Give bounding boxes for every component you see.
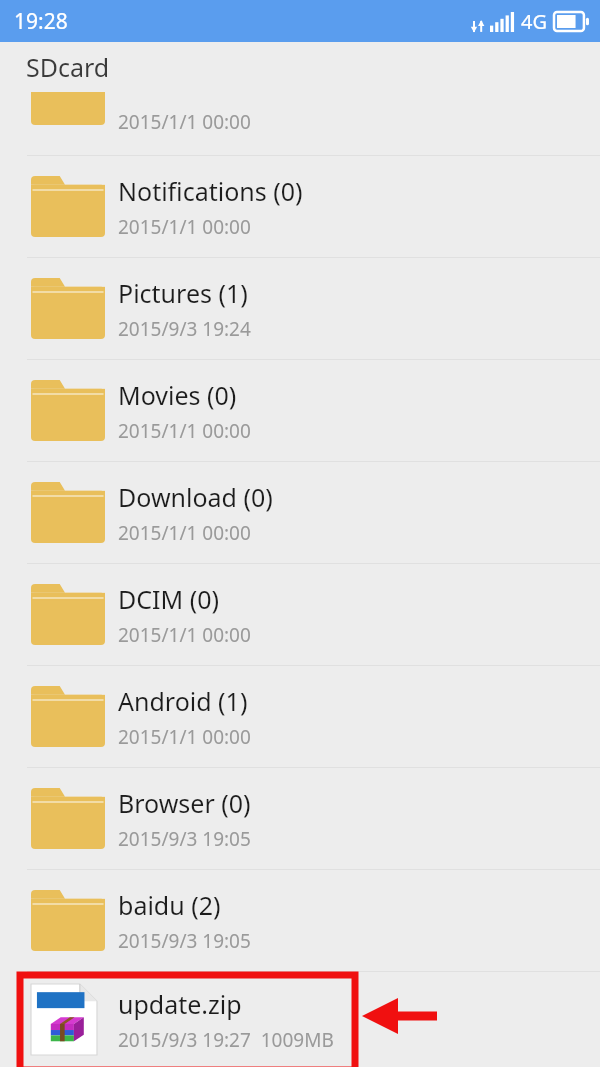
button[interactable]: 2015/1/1 00:00 bbox=[0, 92, 600, 156]
staticText: Browser (0) bbox=[118, 786, 251, 820]
staticText: 2015/1/1 00:00 bbox=[118, 724, 251, 750]
staticText: Android (1) bbox=[118, 684, 248, 718]
staticText: update.zip bbox=[118, 987, 242, 1021]
staticText: Download (0) bbox=[118, 480, 273, 514]
staticText: 2015/9/3 19:27 1009MB bbox=[118, 1027, 334, 1053]
staticText: 4G bbox=[521, 8, 547, 35]
staticText: 2015/9/3 19:24 bbox=[118, 316, 251, 342]
staticText: 2015/9/3 19:05 bbox=[118, 826, 251, 852]
staticText: Movies (0) bbox=[118, 378, 237, 412]
staticText: Pictures (1) bbox=[118, 276, 248, 310]
button[interactable]: Download (0) bbox=[0, 462, 600, 564]
staticText: 2015/1/1 00:00 bbox=[118, 214, 251, 240]
staticText: 2015/1/1 00:00 bbox=[118, 520, 251, 546]
button[interactable]: DCIM (0) bbox=[0, 564, 600, 666]
button[interactable]: Android (1) bbox=[0, 666, 600, 768]
staticText: 2015/1/1 00:00 bbox=[118, 418, 251, 444]
staticText: 2015/9/3 19:05 bbox=[118, 928, 251, 954]
button[interactable]: baidu (2) bbox=[0, 870, 600, 972]
staticText: 2015/1/1 00:00 bbox=[118, 622, 251, 648]
button[interactable]: Movies (0) bbox=[0, 360, 600, 462]
staticText: 2015/1/1 00:00 bbox=[118, 109, 251, 135]
staticText: baidu (2) bbox=[118, 888, 221, 922]
staticText: SDcard bbox=[26, 50, 110, 84]
button[interactable]: Pictures (1) bbox=[0, 258, 600, 360]
button[interactable]: update.zip bbox=[0, 972, 600, 1067]
staticText: 19:28 bbox=[14, 7, 68, 36]
button[interactable]: Notifications (0) bbox=[0, 156, 600, 258]
staticText: DCIM (0) bbox=[118, 582, 220, 616]
button[interactable]: Browser (0) bbox=[0, 768, 600, 870]
staticText: Notifications (0) bbox=[118, 174, 303, 208]
